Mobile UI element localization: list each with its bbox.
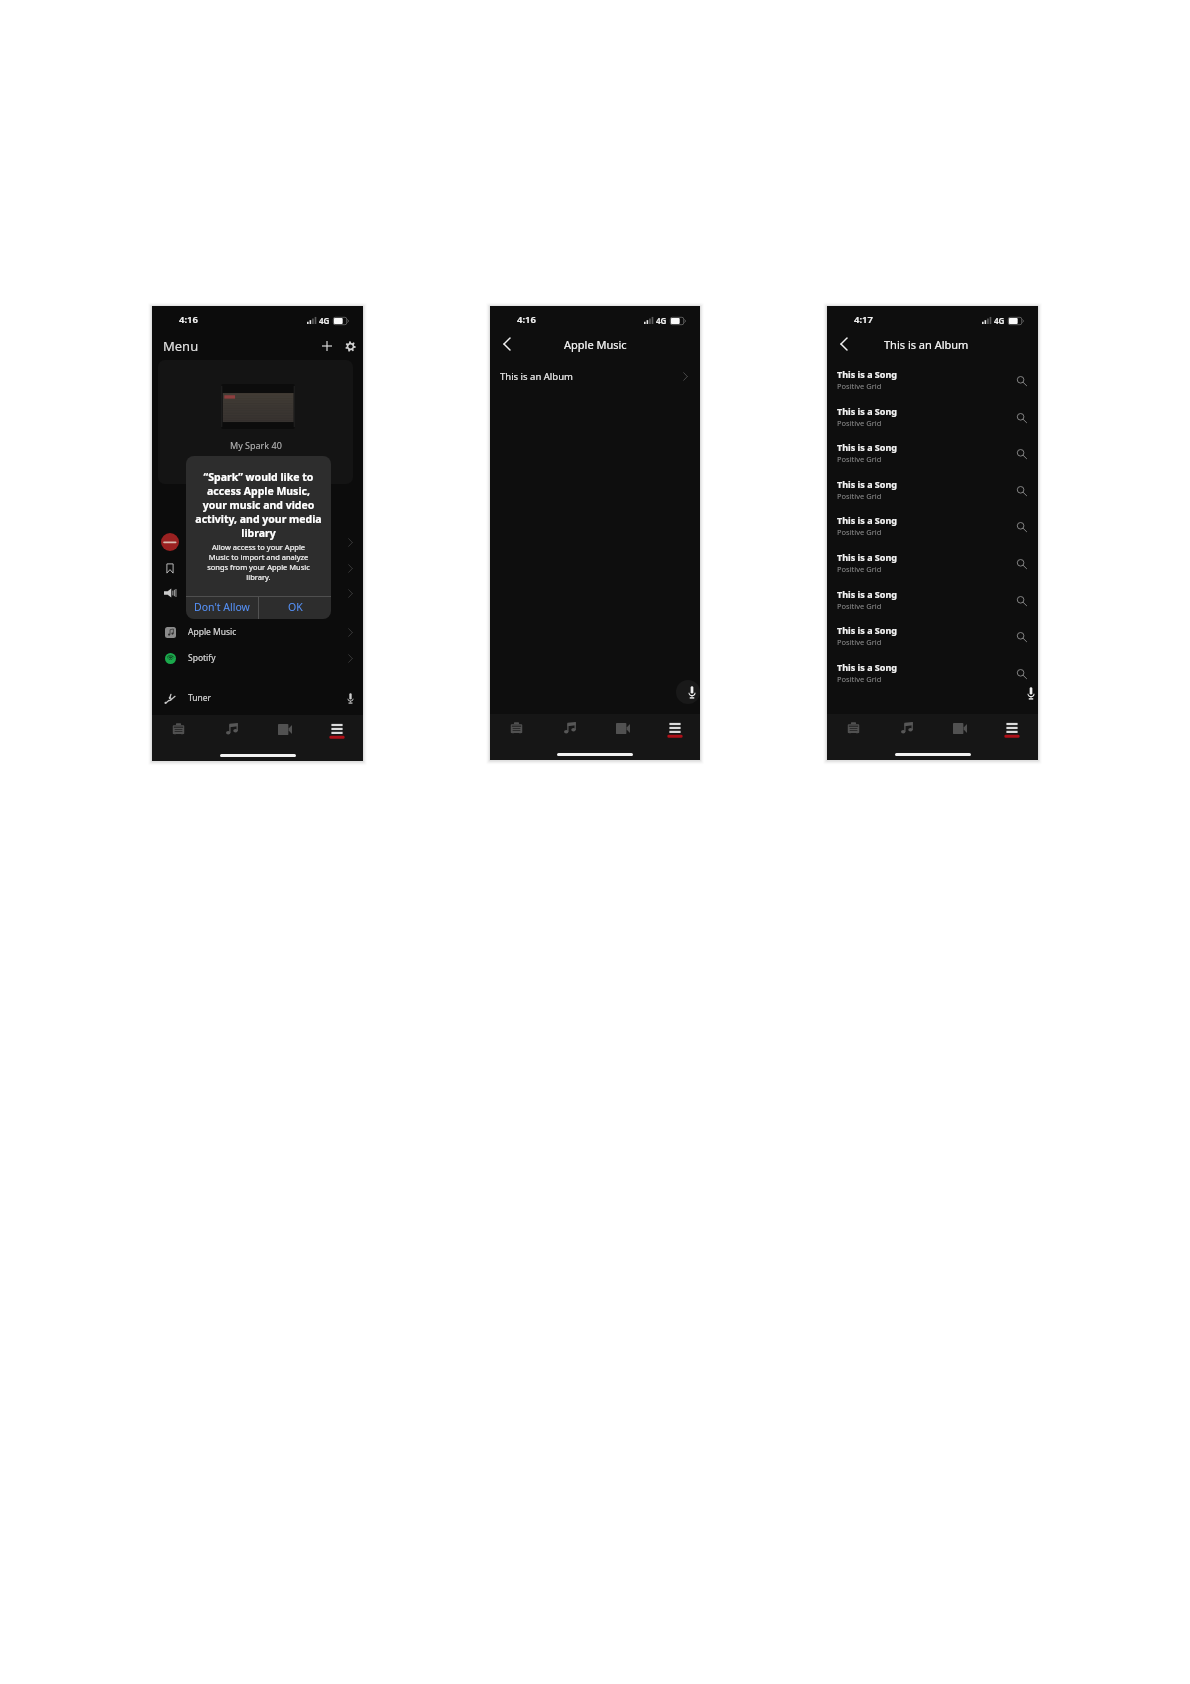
- button[interactable]: Video: [947, 714, 973, 742]
- staticText: 4:16: [179, 313, 198, 326]
- staticText: Positive Grid: [837, 601, 882, 611]
- button[interactable]: My Spark 40: [158, 360, 353, 484]
- button[interactable]: Don't Allow: [186, 597, 258, 619]
- staticText: 4G: [656, 315, 667, 326]
- staticText: This is a Song: [837, 441, 897, 453]
- button[interactable]: Video: [610, 714, 636, 742]
- button[interactable]: Voice: [1015, 681, 1039, 705]
- button[interactable]: Back: [499, 336, 515, 352]
- staticText: Positive Grid: [837, 454, 882, 464]
- button[interactable]: Presets: [165, 715, 191, 743]
- button[interactable]: Search: [1014, 519, 1030, 535]
- staticText: Positive Grid: [837, 491, 882, 501]
- button[interactable]: Settings: [341, 337, 359, 355]
- staticText: Positive Grid: [837, 527, 882, 537]
- staticText: This is a Song: [837, 368, 897, 380]
- button[interactable]: [152, 529, 363, 555]
- staticText: Positive Grid: [837, 564, 882, 574]
- button[interactable]: This is a Song: [827, 547, 1038, 577]
- button[interactable]: Tuner: [152, 685, 363, 711]
- button[interactable]: Search: [1014, 556, 1030, 572]
- button[interactable]: This is a Song: [827, 474, 1038, 504]
- button[interactable]: Presets: [840, 714, 866, 742]
- staticText: This is a Song: [837, 551, 897, 563]
- button[interactable]: This is a Song: [827, 364, 1038, 394]
- staticText: This is a Song: [837, 624, 897, 636]
- staticText: Apple Music: [188, 626, 237, 638]
- staticText: Menu: [163, 337, 199, 355]
- button[interactable]: Menu: [999, 714, 1025, 742]
- button[interactable]: Back: [836, 336, 852, 352]
- button[interactable]: Search: [1014, 593, 1030, 609]
- staticText: This is a Song: [837, 514, 897, 526]
- button[interactable]: [152, 580, 363, 606]
- staticText: Positive Grid: [837, 674, 882, 684]
- button[interactable]: [152, 555, 363, 581]
- button[interactable]: This is a Song: [827, 584, 1038, 614]
- button[interactable]: Search: [1014, 483, 1030, 499]
- button[interactable]: This is a Song: [827, 401, 1038, 431]
- staticText: This is an Album: [500, 370, 573, 383]
- staticText: 4:16: [517, 313, 536, 326]
- button[interactable]: Search: [1014, 629, 1030, 645]
- staticText: This is a Song: [837, 405, 897, 417]
- staticText: Apple Music: [564, 337, 627, 352]
- staticText: Positive Grid: [837, 418, 882, 428]
- button[interactable]: Video: [272, 715, 298, 743]
- staticText: This is a Song: [837, 478, 897, 490]
- button[interactable]: Spotify: [152, 645, 363, 671]
- button[interactable]: This is a Song: [827, 437, 1038, 467]
- staticText: Positive Grid: [837, 381, 882, 391]
- button[interactable]: This is a Song: [827, 657, 1038, 687]
- button[interactable]: Music: [894, 714, 920, 742]
- staticText: This is a Song: [837, 588, 897, 600]
- staticText: This is an Album: [884, 337, 969, 352]
- staticText: 4:17: [854, 313, 873, 326]
- staticText: My Spark 40: [230, 439, 282, 451]
- staticText: This is a Song: [837, 661, 897, 673]
- button[interactable]: Search: [1014, 666, 1030, 682]
- button[interactable]: Search: [1014, 446, 1030, 462]
- button[interactable]: This is a Song: [827, 620, 1038, 650]
- staticText: 4G: [994, 315, 1005, 326]
- button[interactable]: Apple Music: [152, 619, 363, 645]
- staticText: “Spark” would like to access Apple Music…: [186, 470, 331, 540]
- staticText: Allow access to your Apple Music to impo…: [186, 542, 331, 582]
- staticText: Spotify: [188, 652, 216, 664]
- button[interactable]: Voice: [676, 680, 700, 704]
- button[interactable]: Search: [1014, 410, 1030, 426]
- button[interactable]: This is an Album: [490, 364, 700, 388]
- button[interactable]: OK: [259, 597, 331, 619]
- button[interactable]: Menu: [662, 714, 688, 742]
- staticText: Don't Allow: [194, 600, 250, 614]
- button[interactable]: Music: [219, 715, 245, 743]
- button[interactable]: Search: [1014, 373, 1030, 389]
- staticText: Tuner: [188, 692, 212, 704]
- button[interactable]: Presets: [503, 714, 529, 742]
- staticText: 4G: [319, 315, 330, 326]
- staticText: Positive Grid: [837, 637, 882, 647]
- staticText: OK: [288, 600, 303, 614]
- button[interactable]: Add: [318, 337, 336, 355]
- button[interactable]: This is a Song: [827, 510, 1038, 540]
- button[interactable]: Menu: [324, 715, 350, 743]
- button[interactable]: Music: [557, 714, 583, 742]
